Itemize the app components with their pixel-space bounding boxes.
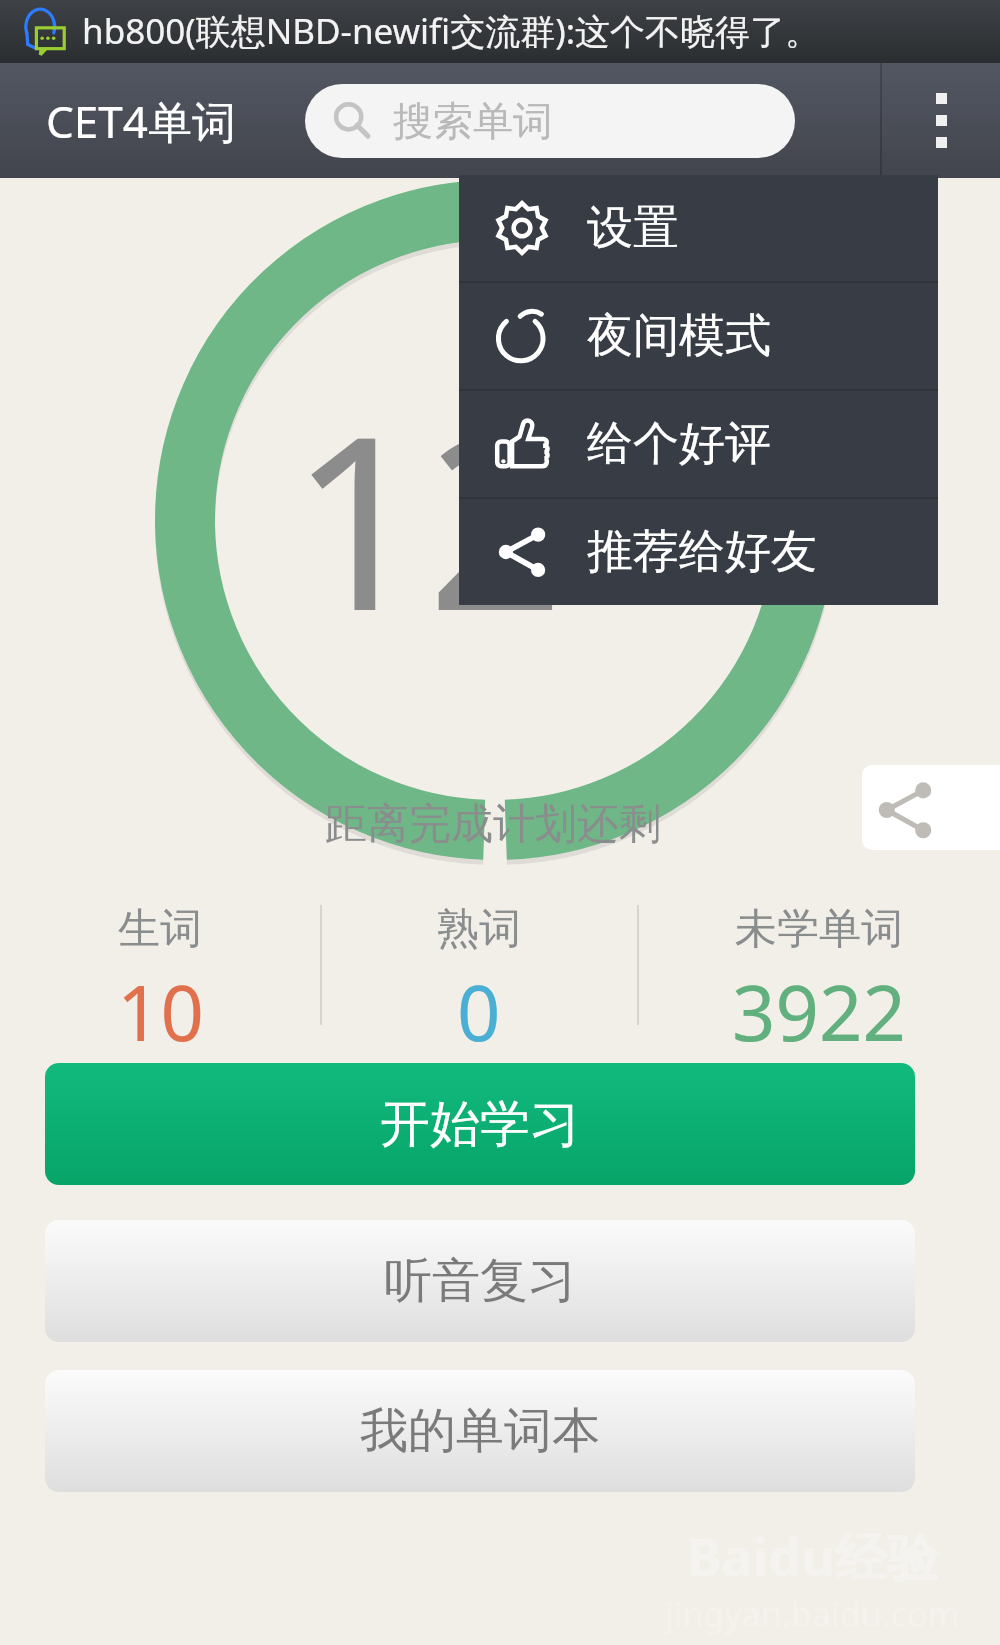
button[interactable]: 夜间模式: [459, 283, 938, 389]
button[interactable]: 生词: [0, 893, 320, 1068]
button[interactable]: 听音复习: [45, 1220, 915, 1342]
staticText: 搜索单词: [393, 96, 553, 146]
staticText: 我的单词本: [360, 1401, 600, 1461]
button[interactable]: 我的单词本: [45, 1370, 915, 1492]
staticText: CET4单词: [46, 91, 236, 151]
staticText: 0: [457, 960, 501, 1064]
button[interactable]: 给个好评: [459, 391, 938, 497]
staticText: 夜间模式: [587, 307, 771, 365]
button[interactable]: Share: [862, 765, 1000, 850]
staticText: 给个好评: [587, 415, 771, 473]
staticText: 未学单词: [735, 903, 903, 956]
staticText: 听音复习: [384, 1251, 576, 1311]
button[interactable]: 未学单词: [637, 893, 1000, 1068]
staticText: 3922: [732, 960, 906, 1064]
staticText: 设置: [587, 199, 679, 257]
staticText: 距离完成计划还剩: [0, 798, 993, 851]
button[interactable]: 推荐给好友: [459, 499, 938, 605]
button[interactable]: 开始学习: [45, 1063, 915, 1185]
staticText: 10: [117, 960, 204, 1064]
button[interactable]: 设置: [459, 175, 938, 281]
button[interactable]: 熟词: [320, 893, 637, 1068]
staticText: 熟词: [437, 903, 521, 956]
staticText: hb800(联想NBD-newifi交流群):这个不晓得了。: [82, 7, 821, 55]
staticText: 生词: [118, 903, 202, 956]
staticText: 开始学习: [380, 1093, 580, 1156]
staticText: 推荐给好友: [587, 523, 817, 581]
staticText: 12: [290, 353, 565, 680]
button[interactable]: More options: [882, 63, 1000, 178]
button[interactable]: 搜索单词: [305, 84, 795, 158]
